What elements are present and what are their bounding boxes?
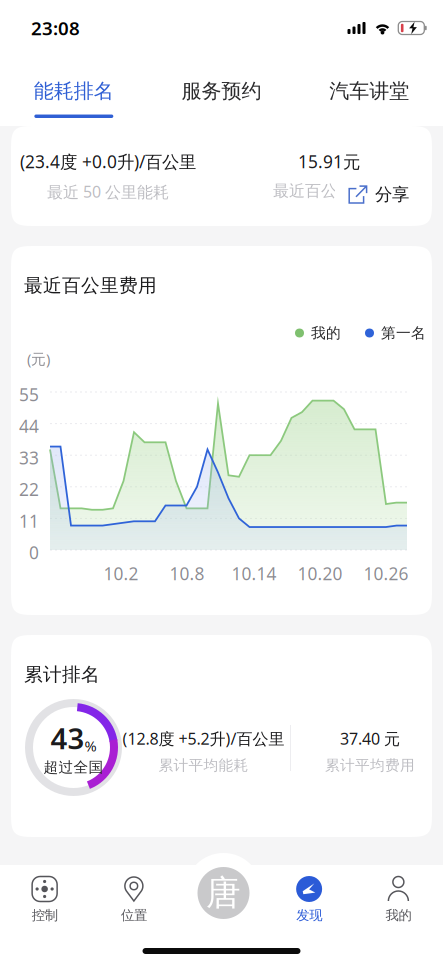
staticText: 汽车讲堂 bbox=[329, 79, 409, 103]
staticText: 第一名 bbox=[381, 324, 426, 342]
staticText: 10.20 bbox=[297, 562, 342, 585]
staticText: (23.4度 +0.0升)/百公里 bbox=[20, 150, 196, 173]
staticText: 37.40 元 bbox=[340, 728, 400, 749]
staticText: 控制 bbox=[32, 907, 58, 923]
button[interactable]: 汽车讲堂 bbox=[295, 56, 443, 126]
staticText: 33 bbox=[19, 446, 39, 469]
staticText: 0 bbox=[29, 541, 39, 564]
staticText: 44 bbox=[19, 415, 39, 438]
staticText: 唐 bbox=[206, 872, 241, 914]
staticText: 10.14 bbox=[231, 562, 276, 585]
button[interactable]: 分享 bbox=[335, 172, 429, 217]
button[interactable]: 控制 bbox=[0, 864, 89, 934]
staticText: 累计排名 bbox=[24, 663, 100, 686]
staticText: 累计平均能耗 bbox=[158, 756, 248, 774]
staticText: 我的 bbox=[311, 324, 341, 342]
staticText: 15.91元 bbox=[298, 150, 360, 173]
staticText: 55 bbox=[19, 383, 39, 406]
staticText: 分享 bbox=[375, 184, 409, 205]
staticText: 11 bbox=[19, 509, 39, 532]
button[interactable]: 发现 bbox=[264, 864, 354, 934]
staticText: (元) bbox=[27, 349, 50, 368]
staticText: 22 bbox=[19, 478, 39, 501]
staticText: 10.26 bbox=[363, 562, 408, 585]
staticText: 最近百公里费用 bbox=[24, 274, 157, 297]
button[interactable]: 唐品牌 bbox=[193, 863, 253, 923]
staticText: 10.2 bbox=[103, 562, 138, 585]
staticText: 10.8 bbox=[169, 562, 204, 585]
staticText: 最近百公里费用 bbox=[273, 181, 385, 201]
staticText: 最近 50 公里能耗 bbox=[47, 181, 169, 202]
staticText: 43 bbox=[50, 718, 84, 757]
staticText: 能耗排名 bbox=[34, 79, 114, 103]
button[interactable]: 能耗排名 bbox=[0, 56, 148, 126]
button[interactable]: 服务预约 bbox=[148, 56, 295, 126]
staticText: 超过全国 bbox=[43, 758, 103, 776]
staticText: 服务预约 bbox=[181, 79, 261, 103]
staticText: (12.8度 +5.2升)/百公里 bbox=[122, 728, 284, 749]
staticText: % bbox=[84, 736, 96, 755]
staticText: 发现 bbox=[296, 907, 322, 923]
staticText: 位置 bbox=[121, 907, 147, 923]
staticText: 我的 bbox=[385, 907, 411, 923]
staticText: 累计平均费用 bbox=[325, 756, 415, 774]
button[interactable]: 位置 bbox=[89, 864, 178, 934]
button[interactable]: 我的 bbox=[354, 864, 443, 934]
staticText: 23:08 bbox=[31, 16, 80, 40]
